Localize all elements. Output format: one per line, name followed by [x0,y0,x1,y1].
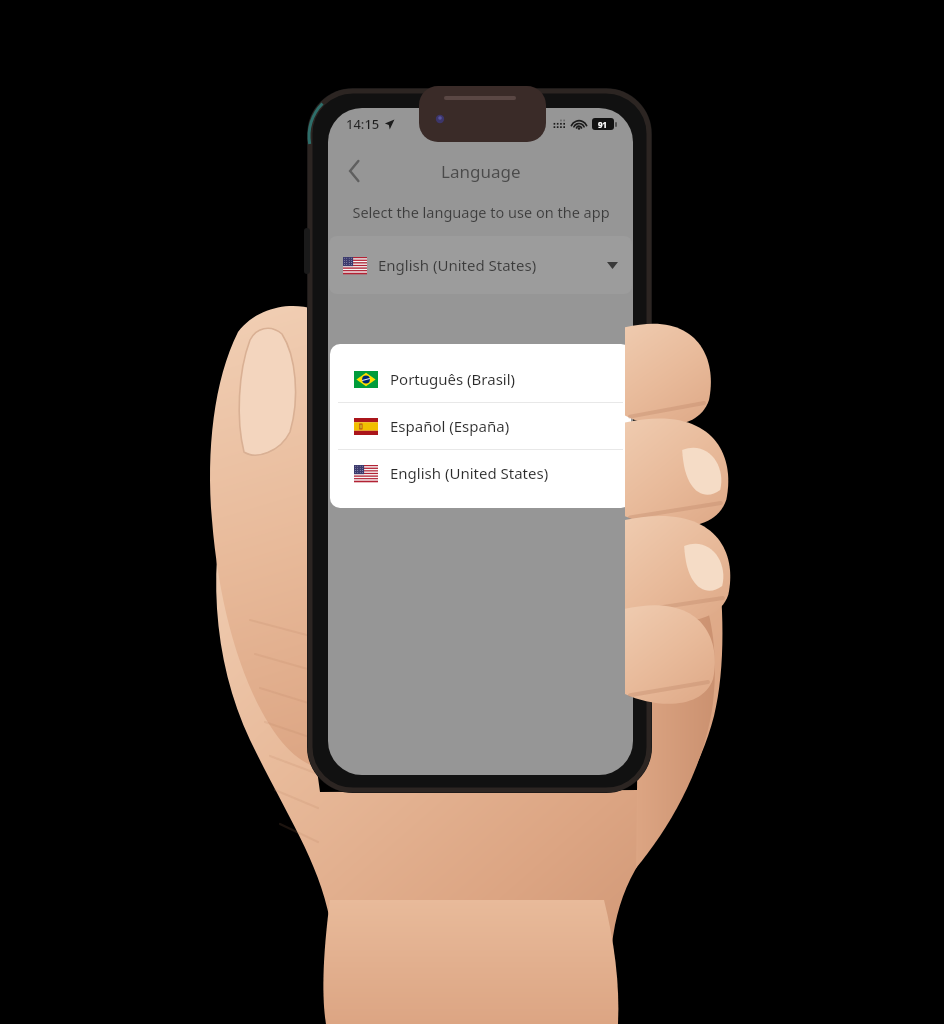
staticText: 14:15 [346,115,380,133]
staticText: Language [441,160,521,183]
staticText: English (United States) [390,463,549,483]
staticText: Español (España) [390,416,510,436]
staticText: Português (Brasil) [390,369,516,389]
button[interactable]: English (United States) [330,450,631,496]
button[interactable]: Back [334,151,374,191]
button[interactable]: English (United States) [329,236,632,294]
staticText: English (United States) [378,255,537,275]
staticText: 91 [598,119,608,130]
staticText: Select the language to use on the app [352,202,610,222]
button[interactable]: Español (España) [330,403,631,449]
button[interactable]: Português (Brasil) [330,356,631,402]
